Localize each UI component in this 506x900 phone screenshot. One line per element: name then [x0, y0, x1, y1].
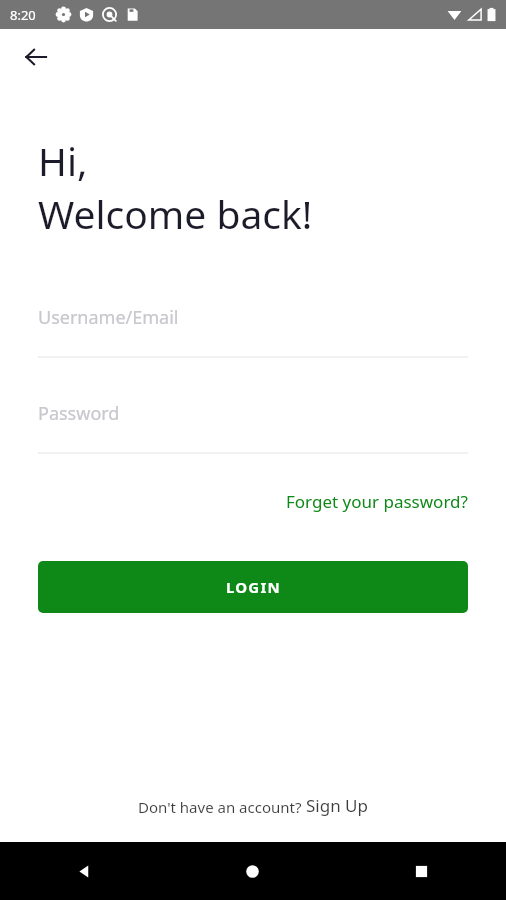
staticText: 8:20: [10, 6, 36, 24]
button[interactable]: Back: [0, 842, 168, 900]
button[interactable]: Sign Up: [306, 794, 368, 817]
button[interactable]: LOGIN: [38, 561, 468, 613]
staticText: Password: [38, 401, 120, 426]
staticText: Welcome back!: [38, 187, 313, 240]
button[interactable]: Username/Email: [38, 295, 468, 358]
button[interactable]: Forget your password?: [286, 490, 468, 513]
staticText: Hi,: [38, 134, 88, 187]
staticText: Don't have an account?: [138, 797, 306, 817]
button[interactable]: Recent apps: [337, 842, 506, 900]
staticText: LOGIN: [226, 577, 281, 597]
button[interactable]: Back: [12, 33, 60, 81]
staticText: Username/Email: [38, 305, 179, 330]
button[interactable]: Home: [168, 842, 337, 900]
button[interactable]: Password: [38, 391, 468, 454]
